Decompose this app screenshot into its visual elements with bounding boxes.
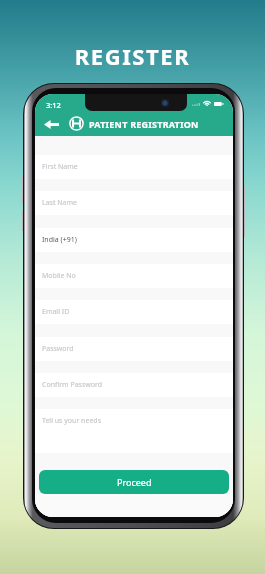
button[interactable]: Back [43, 116, 60, 132]
staticText: India (+91) [42, 235, 77, 245]
button[interactable]: Email ID [35, 300, 233, 324]
button[interactable]: Password [35, 337, 233, 361]
button[interactable]: Confirm Password [35, 373, 233, 397]
staticText: Confirm Password [42, 380, 103, 390]
button[interactable]: Tell us your needs [35, 409, 233, 453]
staticText: Proceed [117, 476, 152, 488]
staticText: 3:12 [46, 100, 61, 110]
button[interactable]: Mobile No [35, 264, 233, 288]
staticText: First Name [42, 162, 78, 172]
staticText: Mobile No [42, 271, 76, 281]
staticText: Email ID [42, 307, 70, 317]
button[interactable]: Last Name [35, 191, 233, 215]
staticText: REGISTER [0, 41, 265, 71]
button[interactable]: First Name [35, 155, 233, 179]
button[interactable]: Proceed [39, 470, 229, 494]
staticText: PATIENT REGISTRATION [89, 118, 199, 130]
staticText: Password [42, 344, 74, 354]
staticText: Last Name [42, 198, 78, 208]
button[interactable]: India (+91) [35, 228, 233, 252]
staticText: Tell us your needs [42, 416, 102, 426]
